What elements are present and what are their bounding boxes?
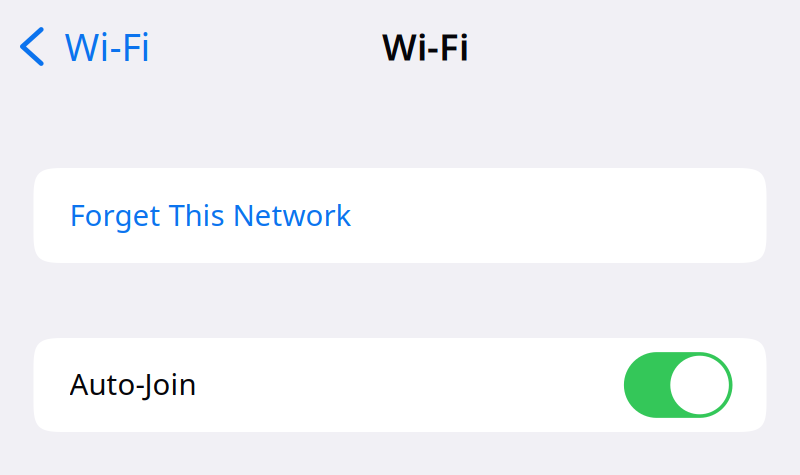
staticText: Forget This Network (69, 195, 351, 234)
button[interactable]: Forget This Network (33, 168, 766, 263)
staticText: Wi-Fi (65, 22, 151, 71)
staticText: Auto-Join (69, 364, 196, 403)
staticText: Wi-Fi (382, 22, 469, 71)
button[interactable]: Wi-Fi (0, 0, 167, 95)
button[interactable]: Auto-Join (33, 338, 766, 432)
